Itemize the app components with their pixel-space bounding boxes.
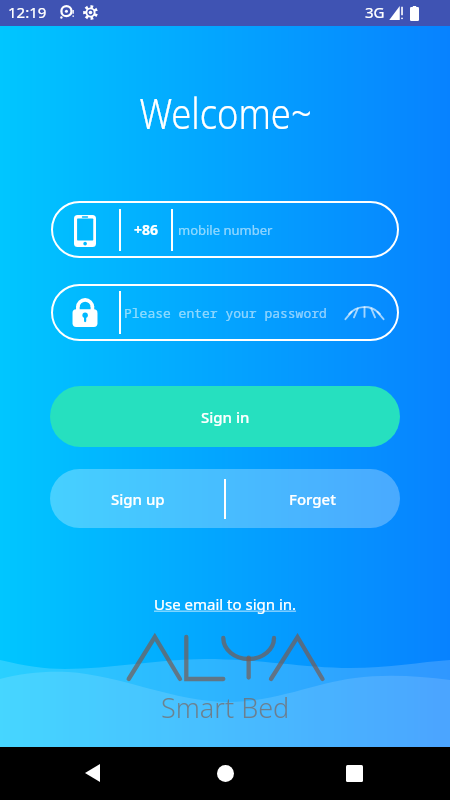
staticText: 12:19 xyxy=(8,2,47,22)
button[interactable]: +86 xyxy=(51,201,399,258)
staticText: mobile number xyxy=(178,221,273,239)
staticText: +86 xyxy=(134,220,159,239)
button[interactable]: Home xyxy=(201,749,249,797)
staticText: Please enter your password xyxy=(124,304,327,322)
button[interactable]: Show password xyxy=(334,289,391,337)
button[interactable]: Recents xyxy=(330,749,378,797)
button[interactable]: Back xyxy=(68,749,116,797)
button[interactable]: Please enter your password xyxy=(51,284,399,341)
staticText: 3G xyxy=(365,2,385,22)
staticText: Smart Bed xyxy=(161,689,290,726)
button[interactable]: Forget xyxy=(225,469,400,528)
button[interactable]: Sign in xyxy=(50,386,400,447)
staticText: Forget xyxy=(289,489,336,509)
staticText: Welcome~ xyxy=(139,83,312,141)
staticText: Sign in xyxy=(201,407,250,427)
staticText: Sign up xyxy=(111,489,165,509)
button[interactable]: Use email to sign in. xyxy=(154,594,297,614)
button[interactable]: Sign up xyxy=(50,469,225,528)
